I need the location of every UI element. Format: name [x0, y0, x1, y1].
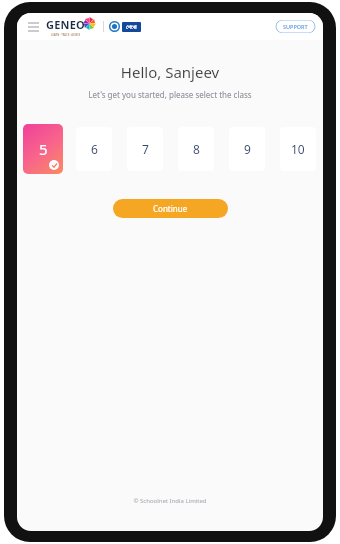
staticText: 7 [142, 141, 149, 157]
staticText: Continue [153, 203, 188, 214]
button[interactable]: Menu [24, 18, 42, 36]
staticText: শেখো [126, 24, 137, 30]
staticText: 8 [193, 141, 200, 157]
button[interactable]: Continue [113, 199, 228, 218]
staticText: 6 [91, 141, 98, 157]
staticText: SUPPORT [283, 23, 308, 30]
button[interactable]: 7 [127, 127, 163, 171]
staticText: Let's get you started, please select the… [17, 89, 323, 100]
button[interactable]: 10 [280, 127, 316, 171]
button[interactable]: 5 [23, 124, 63, 174]
staticText: © Schoolnet India Limited [17, 497, 323, 505]
staticText: 9 [244, 141, 251, 157]
staticText: 10 [291, 141, 305, 157]
button[interactable]: SUPPORT [275, 20, 316, 33]
staticText: GENEO [46, 17, 85, 32]
button[interactable]: 6 [76, 127, 112, 171]
staticText: LEARN · TRACK · ASSESS [51, 33, 81, 37]
button[interactable]: 9 [229, 127, 265, 171]
staticText: 5 [39, 139, 48, 159]
staticText: Hello, Sanjeev [17, 62, 323, 82]
button[interactable]: 8 [178, 127, 214, 171]
